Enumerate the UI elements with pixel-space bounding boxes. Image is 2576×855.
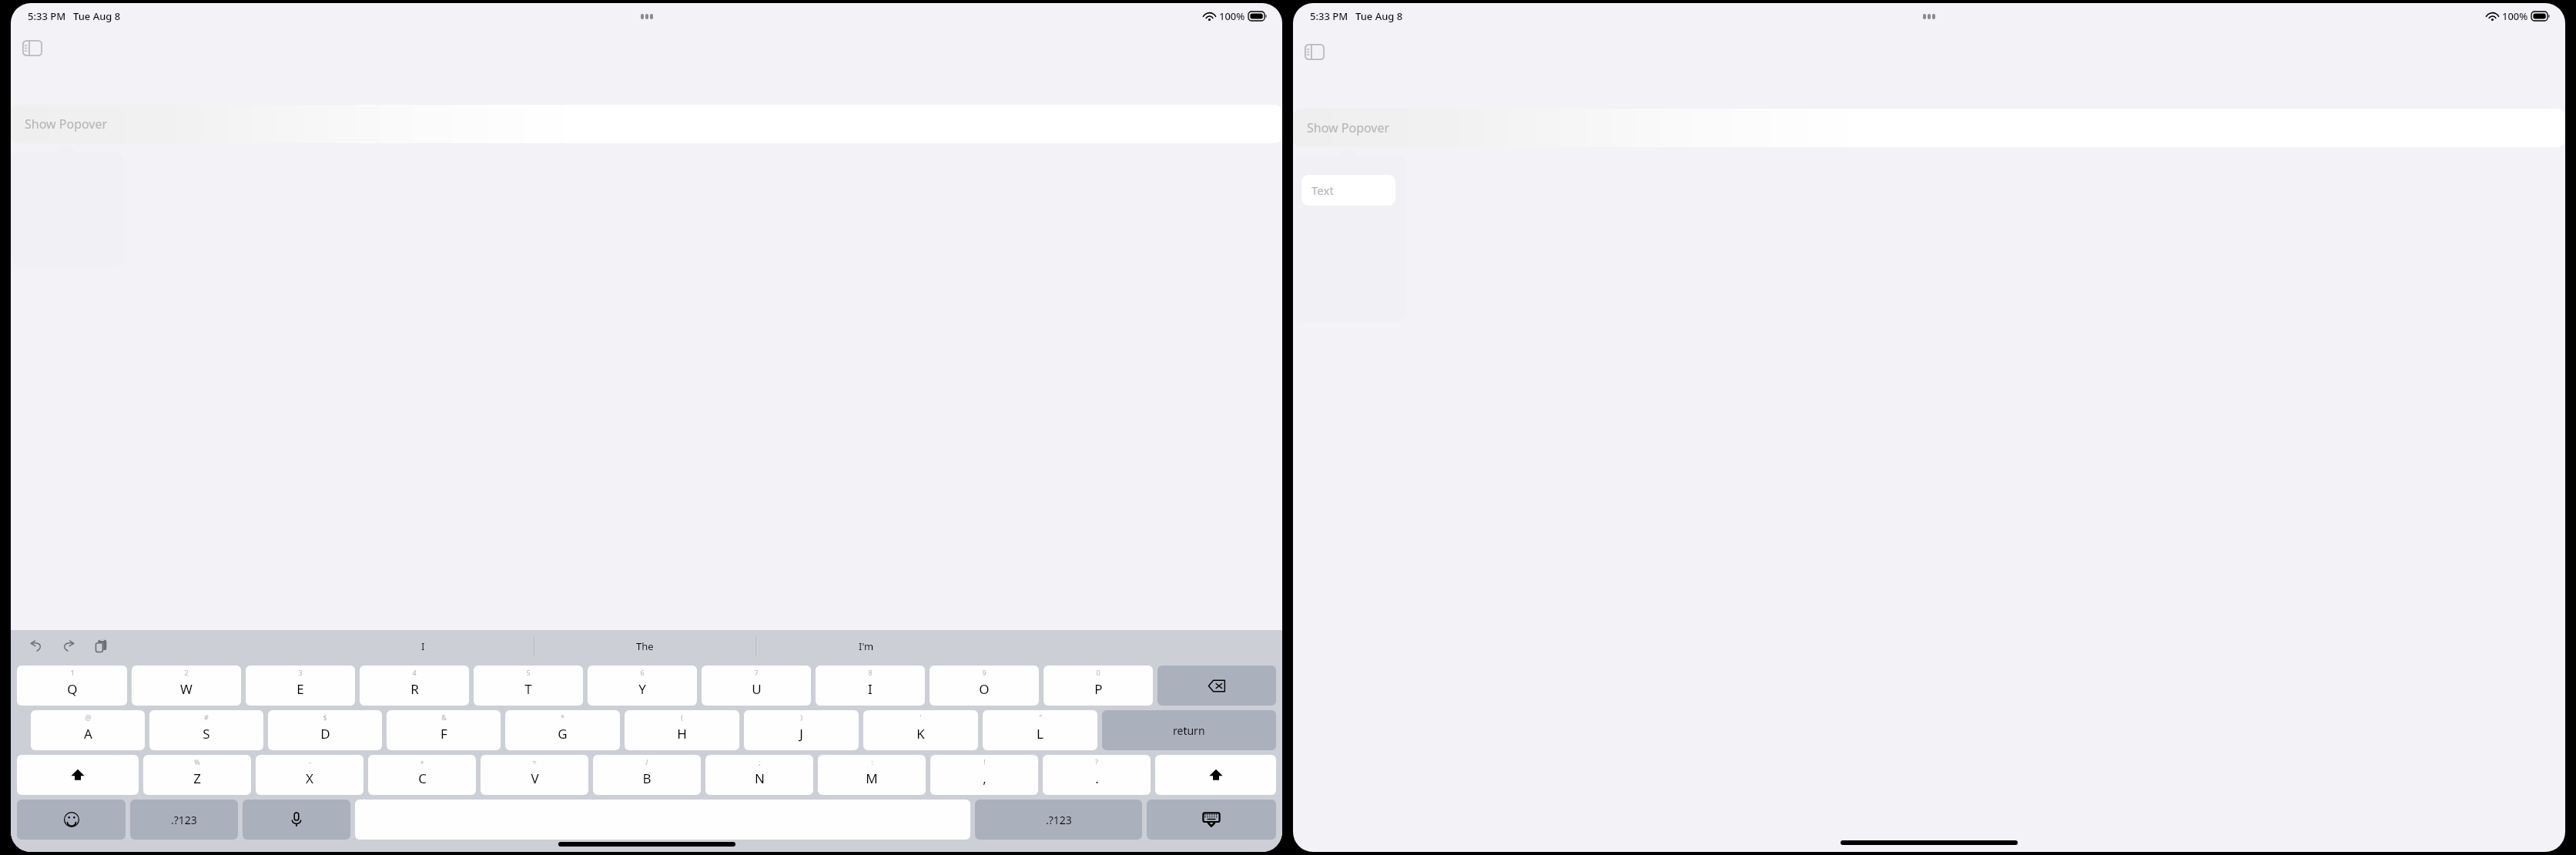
- staticText: R: [410, 680, 419, 698]
- staticText: !: [983, 757, 986, 766]
- staticText: I'm: [859, 639, 874, 653]
- button[interactable]: +: [368, 755, 476, 795]
- staticText: ?: [1095, 757, 1098, 766]
- staticText: 4: [412, 668, 417, 677]
- button[interactable]: $: [268, 710, 382, 750]
- staticText: Show Popover: [25, 116, 108, 132]
- button[interactable]: :: [818, 755, 926, 795]
- button[interactable]: 2: [132, 666, 241, 706]
- staticText: I: [421, 639, 425, 653]
- staticText: Tue Aug 8: [1355, 9, 1403, 23]
- button[interactable]: Hide keyboard: [1147, 800, 1276, 840]
- button[interactable]: %: [143, 755, 251, 795]
- button[interactable]: I: [312, 630, 534, 662]
- button[interactable]: Undo: [23, 633, 49, 659]
- button[interactable]: &: [387, 710, 501, 750]
- button[interactable]: 5: [474, 666, 583, 706]
- button[interactable]: .?123: [975, 800, 1142, 840]
- staticText: D: [320, 725, 330, 743]
- staticText: C: [418, 769, 427, 787]
- staticText: 8: [868, 668, 873, 677]
- button[interactable]: *: [505, 710, 620, 750]
- button[interactable]: @: [31, 710, 145, 750]
- button[interactable]: 1: [17, 666, 127, 706]
- staticText: 5:33 PM: [1310, 9, 1348, 23]
- staticText: M: [866, 769, 878, 787]
- button[interactable]: .?123: [130, 800, 238, 840]
- button[interactable]: /: [593, 755, 701, 795]
- button[interactable]: 6: [588, 666, 697, 706]
- staticText: 2: [184, 668, 189, 677]
- staticText: *: [561, 712, 564, 722]
- button[interactable]: ): [744, 710, 859, 750]
- button[interactable]: 7: [702, 666, 811, 706]
- button[interactable]: (: [625, 710, 739, 750]
- button[interactable]: #: [149, 710, 263, 750]
- staticText: -: [309, 757, 311, 766]
- button[interactable]: Toggle sidebar: [15, 31, 49, 65]
- staticText: Show Popover: [1307, 119, 1390, 136]
- staticText: Q: [67, 680, 78, 698]
- button[interactable]: Show Popover: [11, 105, 1282, 143]
- staticText: 0: [1096, 668, 1100, 677]
- staticText: 1: [70, 668, 75, 677]
- button[interactable]: ': [863, 710, 978, 750]
- button[interactable]: Shift: [1155, 755, 1276, 795]
- staticText: P: [1094, 680, 1103, 698]
- button[interactable]: 4: [360, 666, 469, 706]
- staticText: 3: [298, 668, 303, 677]
- staticText: (: [681, 712, 683, 722]
- staticText: X: [306, 769, 313, 787]
- button[interactable]: Paste: [88, 633, 114, 659]
- staticText: Z: [193, 769, 201, 787]
- button[interactable]: Emoji: [17, 800, 126, 840]
- button[interactable]: Shift: [17, 755, 139, 795]
- staticText: K: [916, 725, 925, 743]
- button[interactable]: 0: [1043, 666, 1153, 706]
- staticText: ': [920, 712, 922, 722]
- staticText: 6: [640, 668, 645, 677]
- button[interactable]: 8: [816, 666, 925, 706]
- button[interactable]: Text: [1301, 175, 1395, 206]
- button[interactable]: ": [983, 710, 1097, 750]
- staticText: $: [323, 712, 327, 722]
- button[interactable]: return: [1102, 710, 1276, 750]
- staticText: .: [1095, 769, 1099, 787]
- staticText: +: [420, 757, 424, 766]
- staticText: Y: [638, 680, 646, 698]
- staticText: 100%: [1219, 9, 1245, 23]
- staticText: E: [296, 680, 304, 698]
- button[interactable]: Dictation: [243, 800, 350, 840]
- button[interactable]: 3: [246, 666, 355, 706]
- staticText: I: [868, 680, 873, 698]
- staticText: &: [441, 712, 447, 722]
- button[interactable]: !: [930, 755, 1038, 795]
- staticText: J: [799, 725, 803, 743]
- button[interactable]: ?: [1043, 755, 1151, 795]
- staticText: /: [645, 757, 648, 766]
- staticText: B: [642, 769, 652, 787]
- button[interactable]: The: [534, 630, 755, 662]
- staticText: =: [532, 757, 537, 766]
- button[interactable]: Toggle sidebar: [1298, 35, 1332, 69]
- staticText: N: [755, 769, 765, 787]
- staticText: T: [524, 680, 532, 698]
- staticText: :: [871, 757, 873, 766]
- staticText: .?123: [1046, 813, 1072, 827]
- button[interactable]: ;: [705, 755, 813, 795]
- button[interactable]: I'm: [755, 630, 977, 662]
- staticText: The: [636, 639, 654, 653]
- staticText: S: [203, 725, 210, 743]
- button[interactable]: -: [256, 755, 363, 795]
- staticText: O: [979, 680, 990, 698]
- button[interactable]: Show Popover: [1293, 109, 2565, 147]
- staticText: ,: [983, 769, 987, 787]
- button[interactable]: =: [481, 755, 588, 795]
- button[interactable]: 9: [930, 666, 1039, 706]
- button[interactable]: Redo: [55, 633, 82, 659]
- staticText: .?123: [171, 813, 197, 827]
- staticText: ): [800, 712, 802, 722]
- button[interactable]: Delete: [1157, 666, 1276, 706]
- staticText: return: [1173, 723, 1205, 738]
